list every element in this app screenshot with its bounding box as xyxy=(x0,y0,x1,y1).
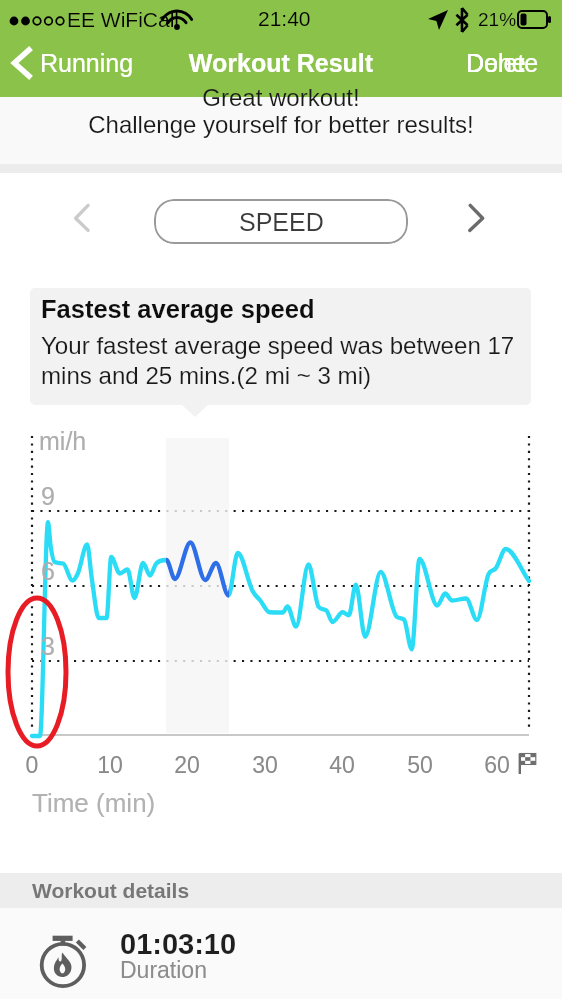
staticText: 40 xyxy=(317,752,367,778)
staticText: Great workout! xyxy=(0,84,562,111)
button[interactable]: Next metric xyxy=(455,197,499,241)
staticText: Time (min) xyxy=(32,788,156,817)
button[interactable]: Delete xyxy=(458,43,547,83)
staticText: Workout details xyxy=(32,879,190,902)
staticText: SPEED xyxy=(239,208,324,236)
staticText: 10 xyxy=(85,752,135,778)
staticText: 21:40 xyxy=(258,7,311,30)
staticText: Challenge yourself for better results! xyxy=(0,111,562,138)
staticText: Delete xyxy=(466,49,539,77)
staticText: Duration xyxy=(120,957,207,983)
button[interactable]: Done xyxy=(458,43,534,83)
staticText: 0 xyxy=(7,752,57,778)
button[interactable]: Fastest average speed xyxy=(30,288,531,405)
staticText: 50 xyxy=(395,752,445,778)
button[interactable]: Previous metric xyxy=(62,197,106,241)
staticText: mi/h xyxy=(39,427,87,455)
staticText: Running xyxy=(40,49,134,77)
staticText: 01:03:10 xyxy=(120,928,237,960)
staticText: Workout Result xyxy=(0,49,562,77)
staticText: 60 xyxy=(472,752,522,778)
staticText: 21% xyxy=(478,9,517,30)
button[interactable]: SPEED xyxy=(154,199,408,244)
staticText: 20 xyxy=(162,752,212,778)
staticText: 30 xyxy=(240,752,290,778)
staticText: 3 xyxy=(41,632,55,660)
staticText: Done xyxy=(466,49,526,77)
staticText: EE WiFiCall xyxy=(67,8,180,31)
staticText: Fastest average speed xyxy=(41,295,315,323)
staticText: 9 xyxy=(41,482,55,510)
staticText: 6 xyxy=(41,557,55,585)
staticText: Your fastest average speed was between 1… xyxy=(41,332,519,389)
button[interactable]: Running xyxy=(6,44,140,82)
